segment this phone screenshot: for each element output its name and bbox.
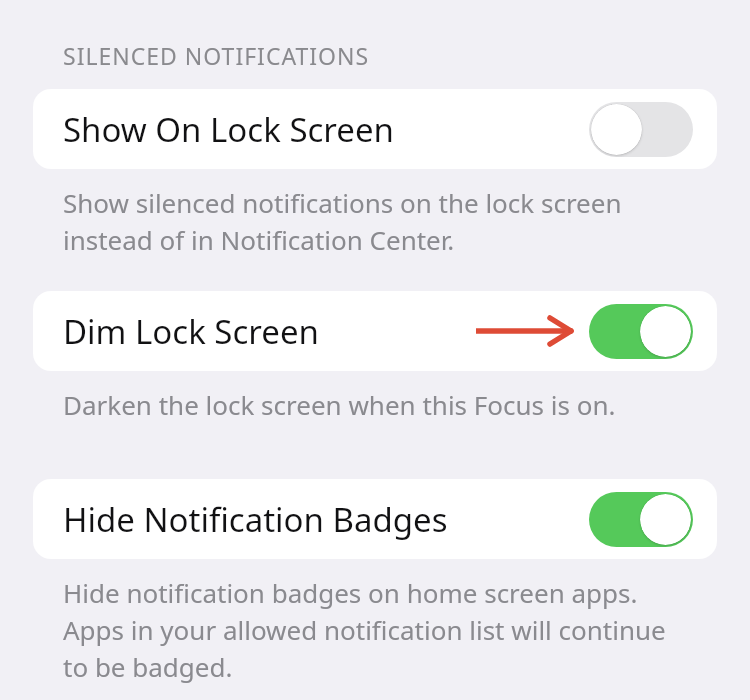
staticText: Dim Lock Screen: [63, 309, 319, 354]
staticText: SILENCED NOTIFICATIONS: [63, 40, 370, 71]
staticText: Hide Notification Badges: [63, 497, 448, 542]
button[interactable]: Show On Lock Screen: [33, 89, 717, 169]
button[interactable]: Hide Notification Badges: [589, 492, 693, 547]
button[interactable]: Dim Lock Screen: [589, 304, 693, 359]
button[interactable]: Show On Lock Screen: [589, 102, 693, 157]
staticText: Darken the lock screen when this Focus i…: [63, 387, 707, 422]
staticText: Show silenced notifications on the lock …: [63, 185, 707, 258]
staticText: Hide notification badges on home screen …: [63, 575, 707, 685]
button[interactable]: Dim Lock Screen: [33, 291, 717, 371]
button[interactable]: Hide Notification Badges: [33, 479, 717, 559]
staticText: Show On Lock Screen: [63, 107, 394, 152]
